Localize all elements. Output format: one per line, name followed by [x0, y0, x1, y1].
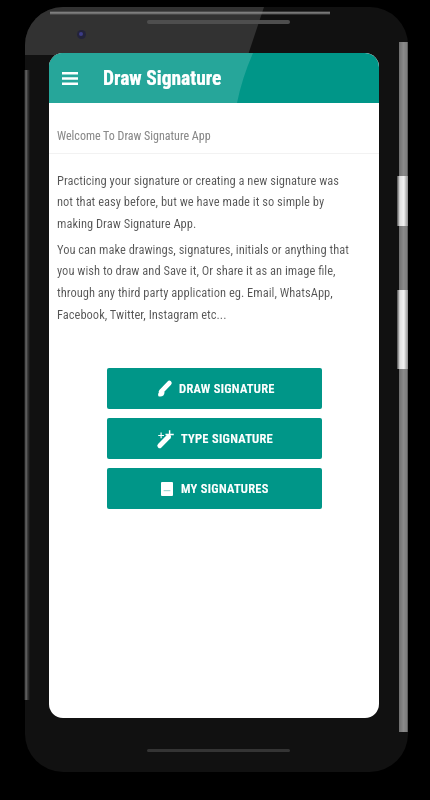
- staticText: Welcome To Draw Signature App: [57, 129, 211, 143]
- button[interactable]: DRAW SIGNATURE: [107, 368, 322, 409]
- button[interactable]: MY SIGNATURES: [107, 468, 322, 509]
- staticText: You can make drawings, signatures, initi…: [57, 242, 357, 322]
- staticText: TYPE SIGNATURE: [181, 431, 274, 446]
- staticText: Draw Signature: [103, 67, 222, 90]
- button[interactable]: Open navigation menu: [50, 58, 90, 98]
- staticText: DRAW SIGNATURE: [179, 381, 275, 396]
- staticText: Practicing your signature or creating a …: [57, 173, 357, 231]
- staticText: MY SIGNATURES: [181, 481, 269, 496]
- button[interactable]: TYPE SIGNATURE: [107, 418, 322, 459]
